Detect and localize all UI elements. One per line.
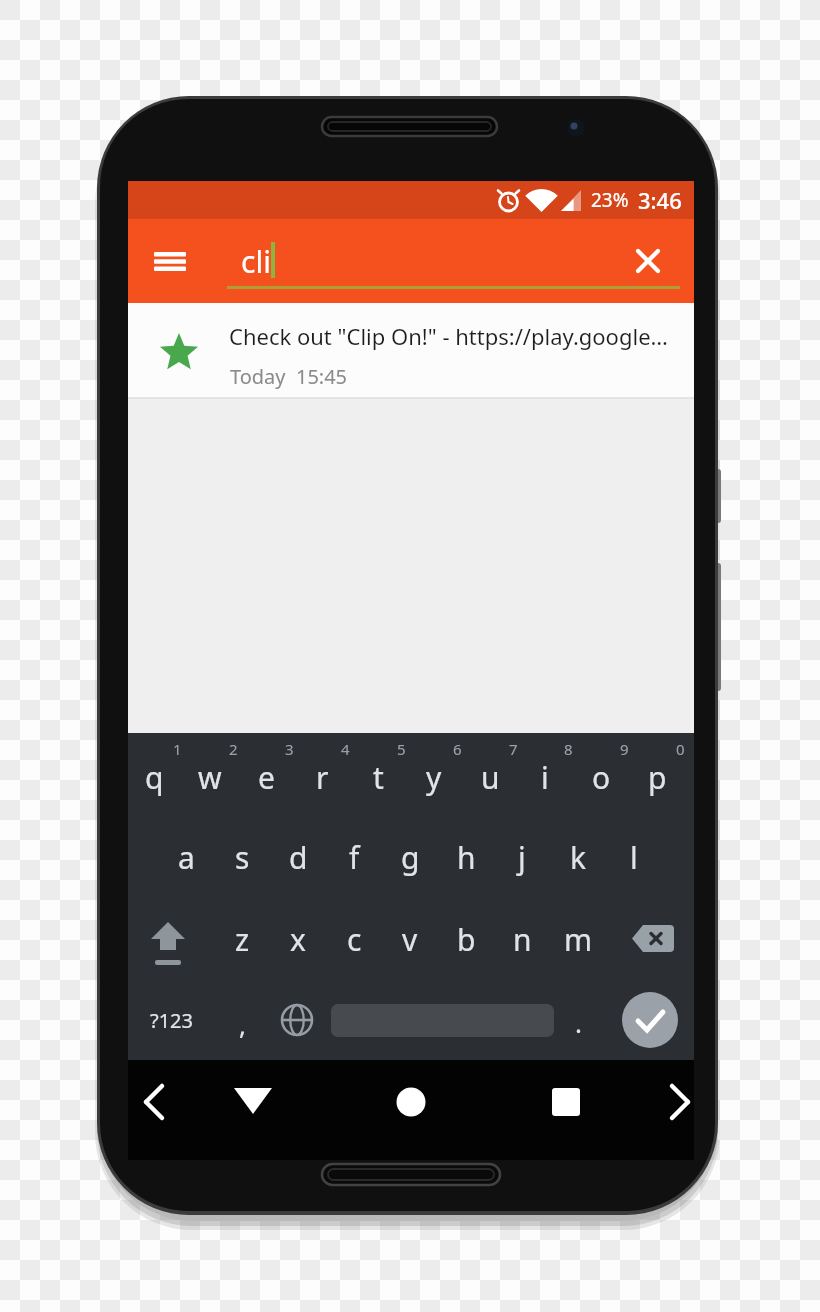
- staticText: v: [402, 919, 418, 960]
- button[interactable]: y: [407, 747, 461, 807]
- staticText: e: [258, 757, 275, 798]
- button[interactable]: [140, 231, 200, 291]
- staticText: ?123: [150, 1007, 193, 1034]
- staticText: 3:46: [638, 185, 682, 215]
- button[interactable]: .: [551, 992, 605, 1052]
- button[interactable]: ?123: [144, 990, 198, 1050]
- button[interactable]: [142, 910, 194, 970]
- button[interactable]: t: [351, 747, 405, 807]
- button[interactable]: j: [495, 827, 549, 887]
- button[interactable]: s: [215, 827, 269, 887]
- button[interactable]: i: [518, 747, 572, 807]
- button[interactable]: o: [574, 747, 628, 807]
- button[interactable]: w: [183, 747, 237, 807]
- staticText: ,: [239, 1007, 246, 1042]
- staticText: n: [513, 919, 532, 960]
- staticText: 8: [564, 739, 573, 759]
- button[interactable]: f: [327, 827, 381, 887]
- button[interactable]: z: [215, 909, 269, 969]
- staticText: 3: [285, 739, 294, 759]
- button[interactable]: [622, 992, 678, 1048]
- staticText: h: [457, 837, 476, 878]
- button[interactable]: v: [383, 909, 437, 969]
- button[interactable]: [664, 1084, 696, 1120]
- button[interactable]: m: [551, 909, 605, 969]
- button[interactable]: l: [607, 827, 661, 887]
- staticText: 9: [620, 739, 629, 759]
- button[interactable]: r: [295, 747, 349, 807]
- button[interactable]: [626, 912, 682, 966]
- staticText: 2: [229, 739, 238, 759]
- staticText: z: [235, 919, 250, 960]
- staticText: 0: [676, 739, 685, 759]
- staticText: 7: [509, 739, 518, 759]
- staticText: d: [289, 837, 308, 878]
- button[interactable]: q: [127, 747, 181, 807]
- staticText: m: [564, 919, 593, 960]
- button[interactable]: [138, 1084, 170, 1120]
- staticText: i: [541, 757, 549, 798]
- button[interactable]: d: [271, 827, 325, 887]
- button[interactable]: [232, 1086, 274, 1118]
- staticText: y: [426, 757, 442, 798]
- button[interactable]: u: [463, 747, 517, 807]
- staticText: 6: [453, 739, 462, 759]
- staticText: l: [630, 837, 638, 878]
- button[interactable]: ,: [215, 994, 269, 1054]
- staticText: u: [481, 757, 500, 798]
- staticText: q: [145, 757, 164, 798]
- button[interactable]: [620, 233, 676, 289]
- button[interactable]: p: [630, 747, 684, 807]
- staticText: k: [570, 837, 587, 878]
- button[interactable]: e: [239, 747, 293, 807]
- button[interactable]: Check out "Clip On!" - https://play.goog…: [128, 303, 694, 397]
- button[interactable]: [273, 996, 321, 1044]
- staticText: g: [401, 837, 420, 878]
- staticText: p: [648, 757, 667, 798]
- staticText: cli: [241, 241, 271, 279]
- button[interactable]: cli: [241, 241, 601, 279]
- staticText: c: [347, 919, 362, 960]
- button[interactable]: a: [159, 827, 213, 887]
- staticText: r: [316, 757, 329, 798]
- staticText: 23%: [591, 187, 629, 213]
- staticText: s: [235, 837, 250, 878]
- staticText: w: [198, 757, 222, 798]
- staticText: 1: [173, 739, 182, 759]
- staticText: t: [373, 757, 384, 798]
- staticText: o: [592, 757, 611, 798]
- staticText: 4: [341, 739, 350, 759]
- staticText: a: [178, 837, 195, 878]
- staticText: f: [349, 837, 360, 878]
- button[interactable]: c: [327, 909, 381, 969]
- staticText: Today 15:45: [230, 363, 348, 390]
- button[interactable]: h: [439, 827, 493, 887]
- staticText: .: [575, 1005, 582, 1040]
- button[interactable]: [396, 1087, 426, 1117]
- staticText: j: [518, 837, 526, 878]
- button[interactable]: x: [271, 909, 325, 969]
- staticText: b: [457, 919, 476, 960]
- staticText: 5: [397, 739, 406, 759]
- button[interactable]: b: [439, 909, 493, 969]
- button[interactable]: n: [495, 909, 549, 969]
- button[interactable]: [552, 1088, 580, 1116]
- staticText: Check out "Clip On!" - https://play.goog…: [229, 321, 668, 351]
- button[interactable]: k: [551, 827, 605, 887]
- staticText: x: [290, 919, 306, 960]
- button[interactable]: g: [383, 827, 437, 887]
